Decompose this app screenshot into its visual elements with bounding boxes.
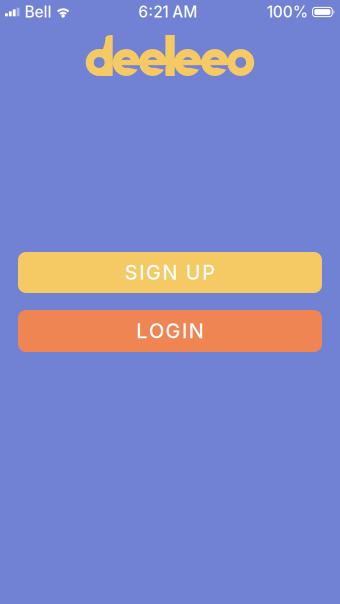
staticText: Bell bbox=[24, 3, 51, 21]
staticText: SIGN UP bbox=[125, 260, 215, 285]
staticText: 100% bbox=[267, 3, 308, 21]
staticText: LOGIN bbox=[136, 319, 204, 343]
button[interactable]: SIGN UP bbox=[18, 252, 322, 293]
button[interactable]: LOGIN bbox=[18, 310, 322, 352]
staticText: 6:21 AM bbox=[138, 3, 197, 21]
